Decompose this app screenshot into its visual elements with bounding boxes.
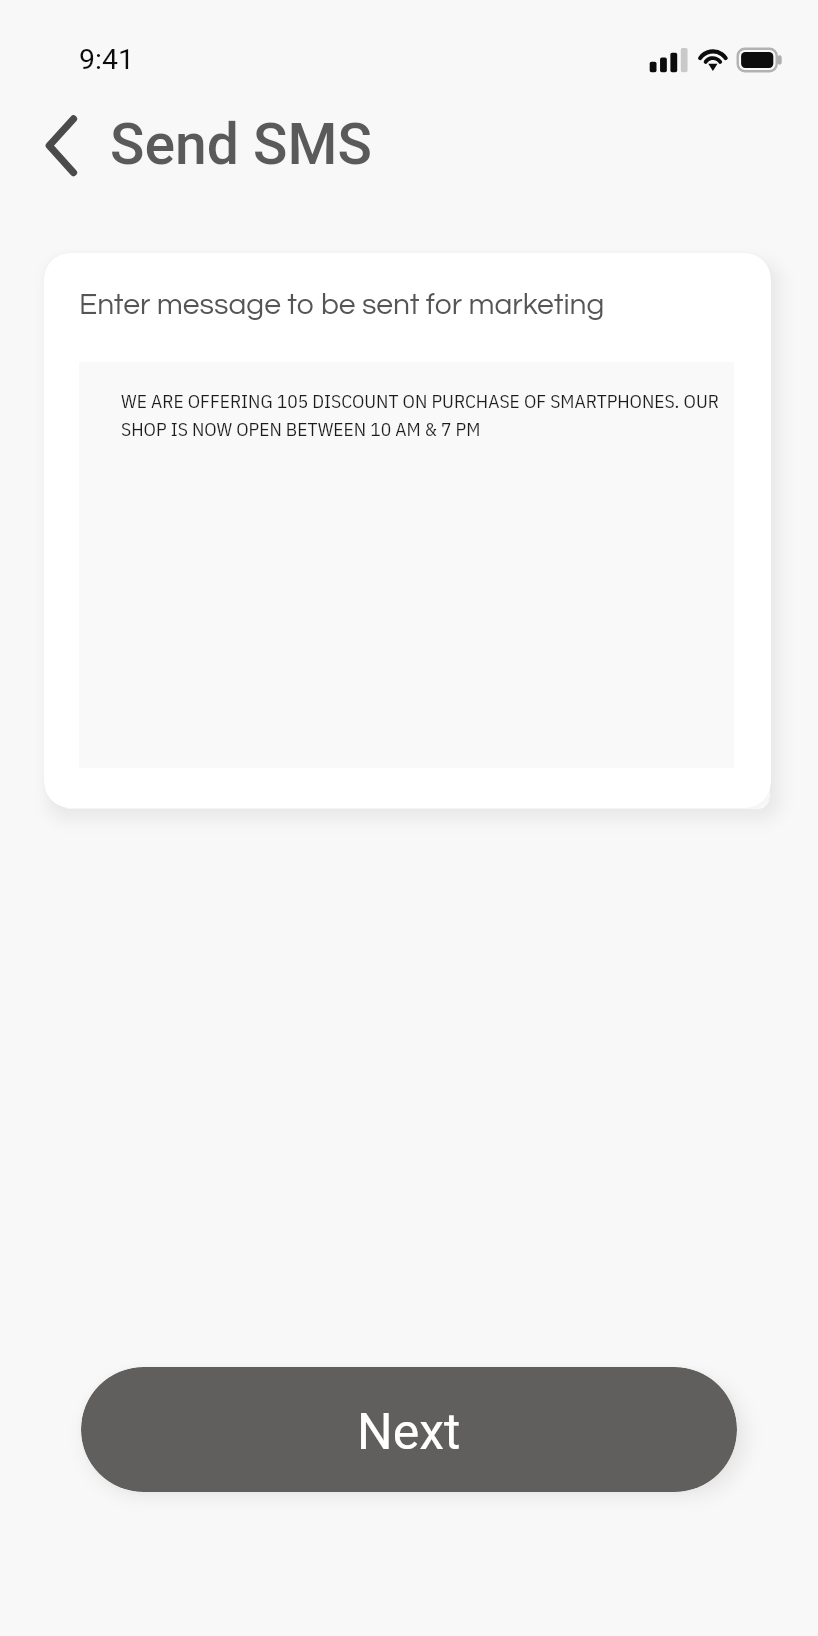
button[interactable]: Back [29, 115, 89, 175]
staticText: Send SMS [110, 111, 372, 178]
staticText: 9:41 [79, 43, 134, 76]
staticText: Enter message to be sent for marketing [79, 289, 605, 320]
staticText: Next [357, 1403, 461, 1462]
staticText: WE ARE OFFERING 105 DISCOUNT ON PURCHASE… [121, 388, 728, 441]
button[interactable]: Next [81, 1367, 737, 1492]
button[interactable]: WE ARE OFFERING 105 DISCOUNT ON PURCHASE… [79, 362, 734, 768]
